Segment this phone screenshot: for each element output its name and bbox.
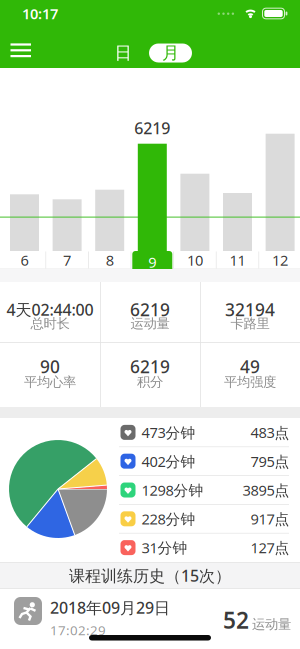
staticText: 483点	[250, 423, 289, 442]
staticText: 473分钟	[141, 423, 195, 442]
staticText: 31分钟	[141, 538, 187, 557]
staticText: 课程训练历史（15次）	[69, 565, 231, 586]
staticText: 10:17	[22, 4, 58, 23]
staticText: 2018年09月29日	[50, 597, 170, 618]
staticText: 10	[187, 250, 203, 270]
staticText: 日	[114, 42, 131, 64]
button[interactable]: Menu	[0, 27, 42, 68]
staticText: 90	[40, 355, 60, 378]
staticText: 228分钟	[141, 509, 195, 529]
staticText: 平均强度	[224, 374, 276, 390]
staticText: 4天02:44:00	[6, 299, 93, 320]
staticText: 52	[223, 605, 249, 635]
staticText: 9	[148, 252, 156, 272]
staticText: 运动量	[130, 315, 169, 332]
staticText: 12	[272, 250, 288, 270]
staticText: 6219	[130, 298, 170, 321]
staticText: 11	[229, 250, 245, 270]
staticText: 1298分钟	[141, 480, 203, 500]
staticText: 7	[63, 250, 71, 270]
button[interactable]: 月	[149, 43, 192, 62]
staticText: 卡路里	[230, 315, 269, 332]
staticText: 32194	[225, 298, 275, 321]
staticText: 917点	[250, 509, 289, 529]
staticText: 127点	[250, 538, 289, 557]
staticText: 8	[106, 250, 114, 270]
staticText: 平均心率	[24, 374, 76, 390]
staticText: 9	[148, 250, 156, 270]
staticText: 17:02:29	[50, 621, 106, 639]
staticText: 运动量	[252, 616, 291, 633]
staticText: 795点	[250, 451, 289, 471]
staticText: 总时长	[30, 315, 69, 332]
button[interactable]: 2018年09月29日	[0, 589, 300, 649]
staticText: 402分钟	[141, 451, 195, 471]
button[interactable]: 日	[101, 44, 145, 62]
staticText: 6	[20, 250, 28, 270]
staticText: 6219	[134, 117, 170, 139]
staticText: 积分	[137, 374, 163, 390]
staticText: 6219	[130, 355, 170, 378]
staticText: 3895点	[242, 480, 289, 500]
staticText: 月	[162, 42, 179, 64]
staticText: 49	[240, 355, 260, 378]
